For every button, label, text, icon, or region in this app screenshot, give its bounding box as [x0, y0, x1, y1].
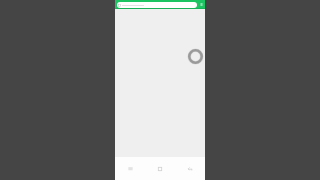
button[interactable] [117, 2, 197, 8]
button[interactable]: More options [198, 0, 204, 9]
button[interactable]: Home [145, 157, 175, 180]
button[interactable]: Back [175, 157, 205, 180]
button[interactable]: Recent apps [115, 157, 145, 180]
